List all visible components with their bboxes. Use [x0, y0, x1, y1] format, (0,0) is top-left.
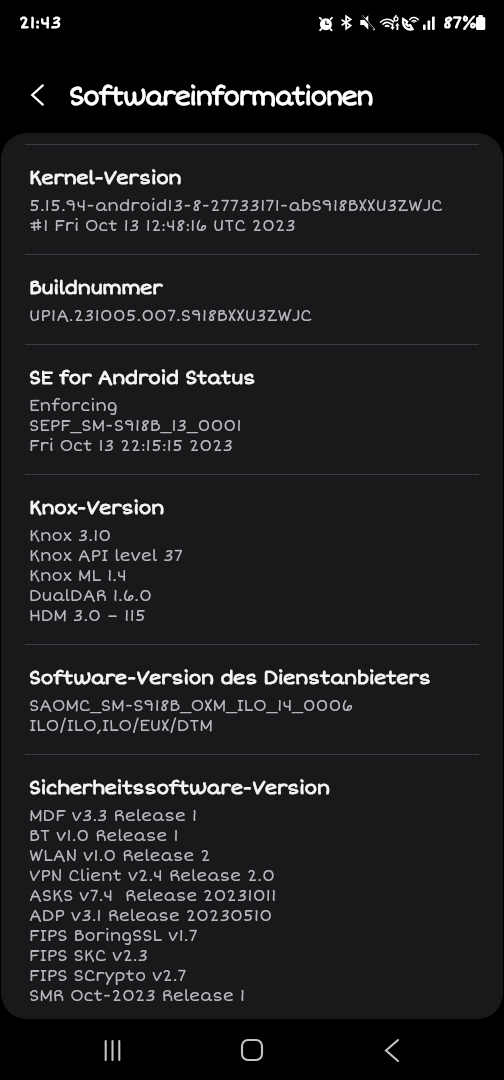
staticText: UP1A.231005.007.S918BXXU3ZWJC: [29, 306, 312, 326]
staticText: FIPS SKC v2.3: [29, 946, 149, 966]
staticText: ASKS v7.4 Release 20231011: [29, 886, 277, 906]
button[interactable]: Buildnummer: [1, 255, 503, 333]
staticText: MDF v3.3 Release 1: [29, 806, 198, 826]
staticText: Knox-Version: [29, 496, 164, 520]
button[interactable]: SE for Android Status: [1, 345, 503, 463]
staticText: FIPS BoringSSL v1.7: [29, 926, 198, 946]
staticText: Kernel-Version: [29, 166, 182, 190]
button[interactable]: Back: [15, 72, 61, 118]
button[interactable]: Recent apps: [84, 1022, 140, 1078]
staticText: Enforcing: [29, 396, 118, 416]
staticText: Knox 3.10: [29, 526, 112, 546]
staticText: Fri Oct 13 22:15:15 2023: [29, 436, 234, 456]
staticText: HDM 3.0 – 115: [29, 606, 146, 626]
staticText: Buildnummer: [29, 276, 163, 300]
staticText: VPN Client v2.4 Release 2.0: [29, 866, 275, 886]
staticText: SEPF_SM-S918B_13_0001: [29, 416, 242, 436]
staticText: ADP v3.1 Release 20230510: [29, 906, 273, 926]
button[interactable]: Back: [364, 1022, 420, 1078]
staticText: Knox ML 1.4: [29, 566, 127, 586]
staticText: ILO/ILO,ILO/EUX/DTM: [29, 716, 213, 736]
button[interactable]: Kernel-Version: [1, 145, 503, 243]
staticText: Softwareinformationen: [69, 82, 373, 113]
staticText: DualDAR 1.6.0: [29, 586, 152, 606]
staticText: Sicherheitssoftware-Version: [29, 776, 330, 800]
staticText: BT v1.0 Release 1: [29, 826, 179, 846]
button[interactable]: Sicherheitssoftware-Version: [1, 755, 503, 1013]
staticText: 87%: [443, 12, 477, 33]
staticText: Software-Version des Dienstanbieters: [29, 666, 431, 690]
button[interactable]: Knox-Version: [1, 475, 503, 633]
staticText: 5.15.94-android13-8-27733171-abS918BXXU3…: [29, 196, 443, 216]
staticText: WLAN v1.0 Release 2: [29, 846, 211, 866]
staticText: 21:43: [19, 12, 62, 33]
button[interactable]: Software-Version des Dienstanbieters: [1, 645, 503, 743]
button[interactable]: Home: [224, 1022, 280, 1078]
staticText: Knox API level 37: [29, 546, 183, 566]
staticText: SMR Oct-2023 Release 1: [29, 986, 246, 1006]
staticText: SAOMC_SM-S918B_OXM_ILO_14_0006: [29, 696, 354, 716]
staticText: SE for Android Status: [29, 366, 256, 390]
staticText: #1 Fri Oct 13 12:48:16 UTC 2023: [29, 216, 296, 236]
staticText: FIPS SCrypto v2.7: [29, 966, 187, 986]
